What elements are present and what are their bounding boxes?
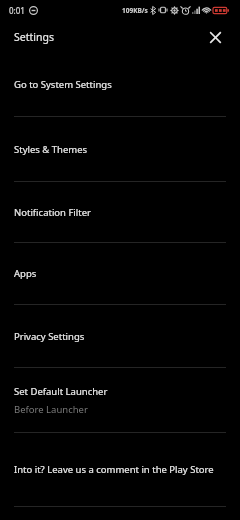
staticText: Privacy Settings [14,330,85,343]
staticText: 0:01 [9,5,25,16]
button[interactable]: Close [203,25,227,49]
staticText: Apps [14,267,37,280]
staticText: Settings [14,30,54,44]
button[interactable]: Notification Filter [0,182,240,242]
staticText: Into it? Leave us a comment in the Play … [14,463,214,476]
button[interactable]: Styles & Themes [0,117,240,181]
button[interactable]: Into it? Leave us a comment in the Play … [0,433,240,506]
button[interactable]: Go to System Settings [0,53,240,116]
button[interactable]: Privacy Settings [0,305,240,367]
staticText: Styles & Themes [14,143,88,156]
staticText: Notification Filter [14,206,91,219]
staticText: Go to System Settings [14,78,112,91]
staticText: 109KB/s [122,6,148,15]
staticText: Set Default Launcher [14,385,108,398]
staticText: Before Launcher [14,403,88,416]
button[interactable]: Apps [0,243,240,304]
button[interactable]: Set Default Launcher [0,368,240,432]
